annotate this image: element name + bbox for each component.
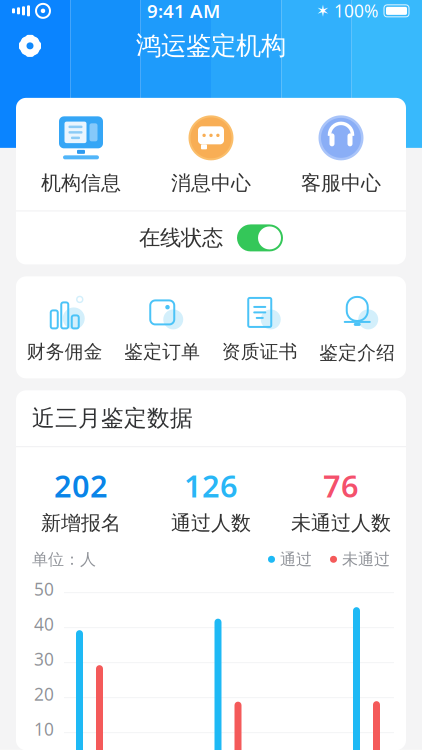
staticText: ✶ (316, 2, 329, 20)
staticText: 鉴定介绍 (319, 341, 395, 364)
button[interactable]: 鉴定介绍 (308, 292, 406, 364)
staticText: 鉴定订单 (124, 340, 200, 363)
button[interactable]: 设置 (8, 24, 52, 68)
button[interactable]: 消息中心 (146, 115, 276, 195)
staticText: 机构信息 (41, 171, 121, 195)
button[interactable]: 在线状态开关 (16, 211, 406, 264)
button[interactable]: 客服中心 (276, 115, 406, 195)
staticText: 资质证书 (222, 340, 298, 363)
button[interactable]: 鉴定订单 (113, 293, 211, 363)
staticText: 50 (34, 578, 54, 601)
staticText: 30 (34, 648, 54, 671)
staticText: 在线状态 (139, 225, 223, 251)
staticText: 40 (34, 613, 54, 636)
button[interactable]: 资质证书 (211, 293, 308, 363)
staticText: 20 (34, 683, 54, 706)
staticText: 鸿运鉴定机构 (136, 30, 286, 61)
staticText: 10 (34, 718, 54, 741)
staticText: 近三月鉴定数据 (32, 404, 193, 432)
button[interactable]: 机构信息 (16, 115, 146, 195)
staticText: 通过人数 (171, 511, 251, 535)
button[interactable]: 财务佣金 (16, 293, 113, 363)
staticText: 100% (334, 0, 378, 22)
staticText: 单位：人 (32, 549, 96, 569)
staticText: 财务佣金 (27, 340, 103, 363)
staticText: 新增报名 (41, 511, 121, 535)
staticText: 未通过人数 (291, 511, 391, 535)
staticText: 202 (54, 465, 108, 506)
staticText: 客服中心 (301, 171, 381, 195)
staticText: 126 (184, 465, 238, 506)
staticText: 消息中心 (171, 171, 251, 195)
staticText: 未通过 (342, 549, 390, 569)
staticText: 76 (323, 465, 359, 506)
staticText: 9:41 AM (147, 0, 220, 23)
staticText: 通过 (280, 549, 312, 569)
